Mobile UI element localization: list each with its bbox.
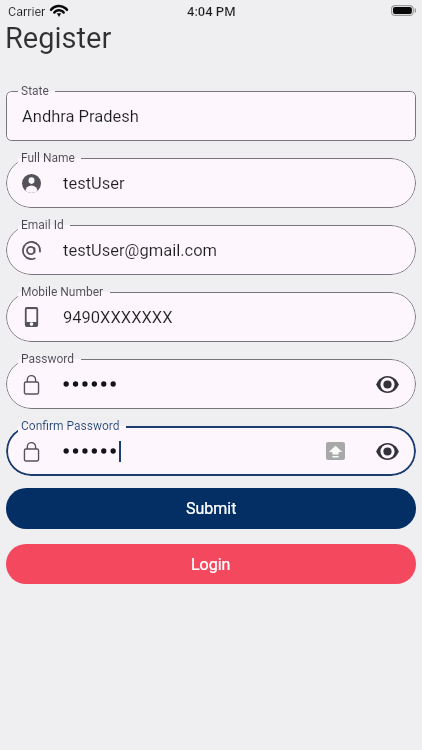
staticText: Andhra Pradesh bbox=[22, 107, 139, 126]
staticText: Register bbox=[5, 21, 112, 55]
button[interactable]: Toggle password visibility bbox=[376, 441, 399, 462]
staticText: Password bbox=[21, 352, 75, 366]
staticText: State bbox=[21, 84, 49, 98]
button[interactable]: Andhra Pradesh bbox=[6, 91, 416, 141]
staticText: Submit bbox=[186, 499, 237, 518]
button[interactable]: testUser@gmail.com bbox=[6, 225, 416, 275]
staticText: 4:04 PM bbox=[187, 4, 236, 19]
staticText: Login bbox=[191, 555, 231, 574]
staticText: Email Id bbox=[21, 218, 64, 232]
staticText: Carrier bbox=[8, 4, 46, 19]
button[interactable]: testUser bbox=[6, 158, 416, 208]
staticText: Full Name bbox=[21, 151, 75, 165]
staticText: Mobile Number bbox=[21, 285, 104, 299]
staticText: 9490XXXXXXX bbox=[63, 308, 173, 327]
button[interactable]: Submit bbox=[6, 488, 416, 529]
button[interactable]: Toggle password visibility bbox=[6, 426, 416, 476]
button[interactable]: Toggle password visibility bbox=[6, 359, 416, 409]
staticText: testUser@gmail.com bbox=[63, 241, 218, 260]
button[interactable]: 9490XXXXXXX bbox=[6, 292, 416, 342]
button[interactable]: Login bbox=[6, 544, 416, 584]
staticText: testUser bbox=[63, 174, 125, 193]
staticText: Confirm Password bbox=[21, 419, 120, 433]
button[interactable]: Toggle password visibility bbox=[376, 374, 399, 395]
